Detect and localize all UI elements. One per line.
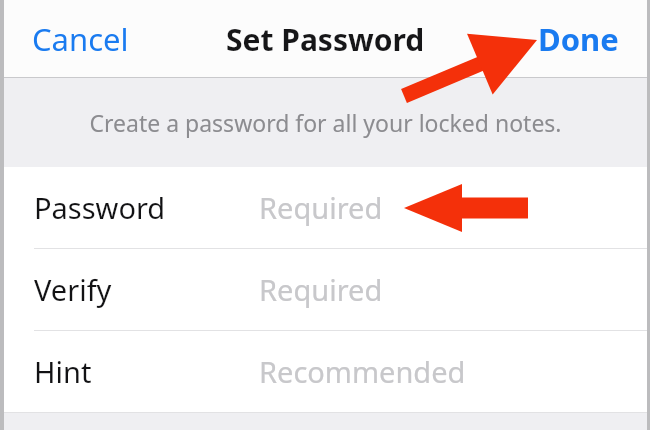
staticText: Password [34,188,166,227]
button[interactable]: Done [524,8,633,70]
staticText: Verify [34,270,112,309]
staticText: Recommended [259,352,466,391]
staticText: Required [259,270,383,309]
staticText: Create a password for all your locked no… [89,107,562,138]
staticText: Done [538,18,619,60]
button[interactable]: Cancel [18,8,143,70]
button[interactable]: Password [4,167,647,248]
staticText: Required [259,188,383,227]
button[interactable]: Verify [4,249,647,330]
staticText: Set Password [226,19,425,60]
staticText: Hint [34,352,92,391]
staticText: Cancel [32,18,129,60]
button[interactable]: Hint [4,331,647,412]
